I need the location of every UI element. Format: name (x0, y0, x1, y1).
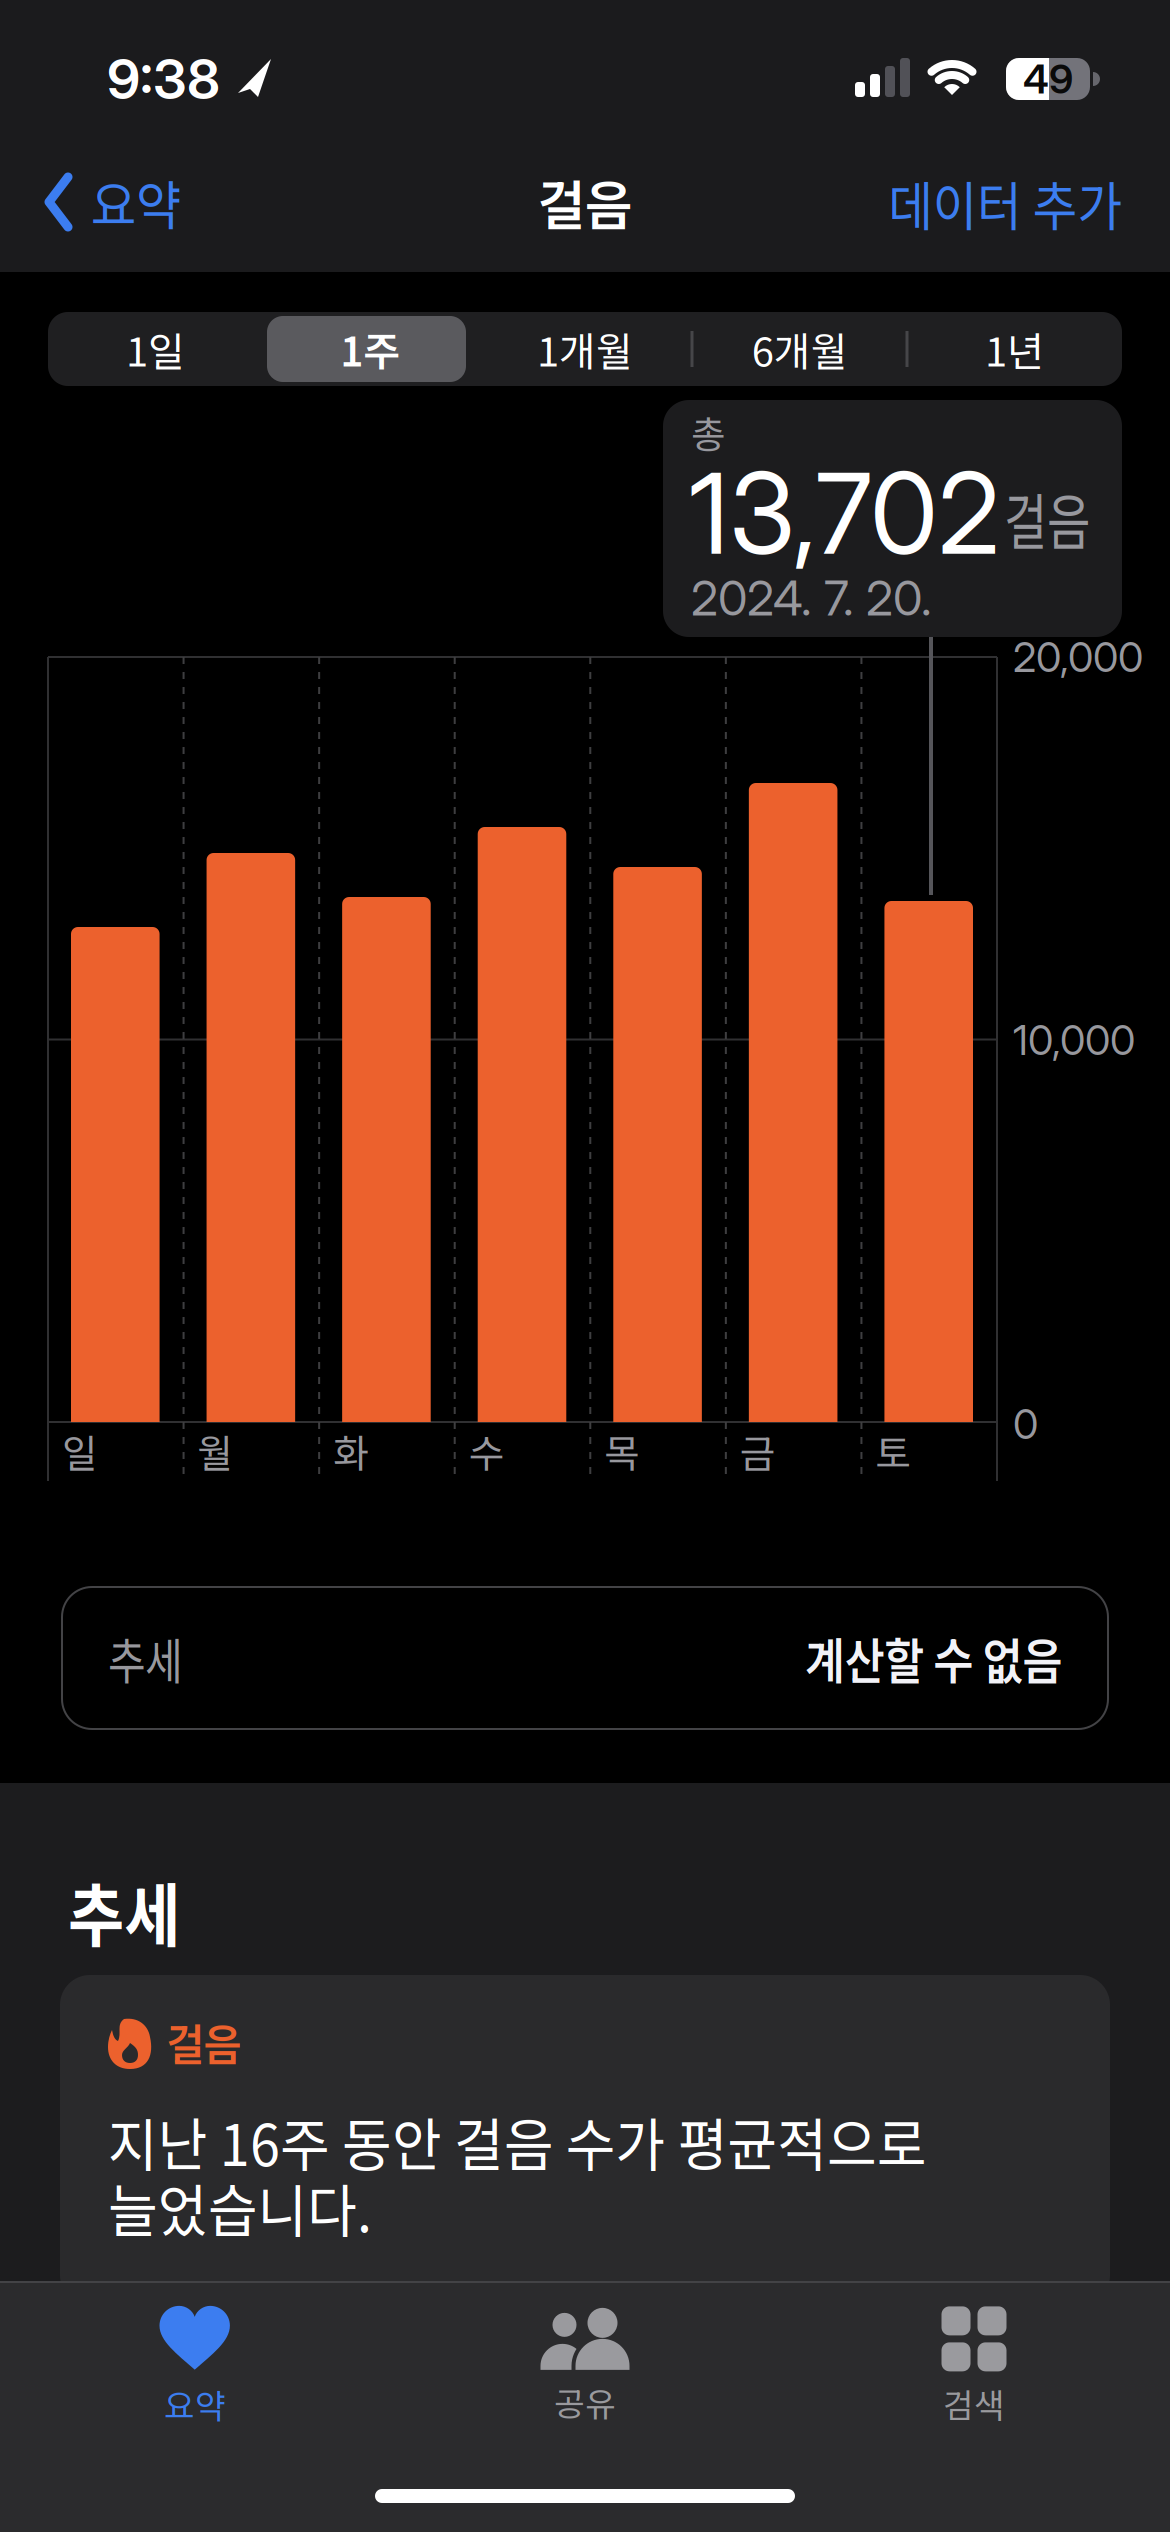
staticText: 9:38 (107, 46, 220, 112)
staticText: 금 (740, 1423, 776, 1479)
button[interactable]: Back (45, 152, 305, 252)
button[interactable]: 공유 (465, 2297, 705, 2437)
staticText: 수 (469, 1423, 505, 1479)
staticText: 2024. 7. 20. (691, 569, 932, 627)
button[interactable]: 1개월 (485, 312, 685, 386)
staticText: 1년 (985, 320, 1044, 378)
staticText: 계산할 수 없음 (770, 1622, 1062, 1694)
button[interactable]: 요약 (75, 2297, 315, 2437)
staticText: 총 (691, 405, 725, 459)
staticText: 49 (1023, 55, 1073, 103)
staticText: 검색 (943, 2379, 1005, 2428)
staticText: 지난 16주 동안 걸음 수가 평균적으로 (108, 2099, 979, 2182)
staticText: 13,702 (689, 445, 1006, 581)
button[interactable]: 1일 (55, 312, 255, 386)
button[interactable]: 데이터 추가 (722, 153, 1122, 253)
staticText: 1일 (126, 320, 185, 378)
staticText: 추세 (68, 1861, 196, 1961)
staticText: 걸음 (536, 163, 634, 241)
staticText: 공유 (554, 2378, 616, 2426)
staticText: 10,000 (1013, 1015, 1135, 1065)
staticText: 월 (198, 1423, 234, 1479)
button[interactable]: 1년 (915, 312, 1115, 386)
staticText: 요약 (164, 2380, 226, 2428)
staticText: 6개월 (752, 320, 848, 378)
staticText: 걸음 (1004, 474, 1116, 562)
button[interactable]: 검색 (854, 2297, 1094, 2437)
button[interactable]: 1주 (270, 312, 470, 386)
staticText: 데이터 추가 (865, 164, 1122, 242)
button[interactable]: 6개월 (700, 312, 900, 386)
staticText: 토 (875, 1423, 911, 1479)
staticText: 걸음 (166, 2010, 246, 2074)
staticText: 0 (1013, 1399, 1038, 1449)
staticText: 목 (604, 1423, 640, 1479)
staticText: 늘었습니다. (108, 2165, 389, 2248)
staticText: 1주 (340, 320, 400, 378)
button[interactable]: 추세 (60, 1585, 1110, 1731)
button[interactable]: 걸음 (60, 1975, 1110, 2305)
staticText: 추세 (108, 1622, 198, 1694)
staticText: 요약 (91, 163, 189, 241)
staticText: 20,000 (1013, 632, 1143, 682)
staticText: 1개월 (537, 320, 633, 378)
staticText: 화 (333, 1423, 369, 1479)
staticText: 일 (62, 1423, 98, 1479)
